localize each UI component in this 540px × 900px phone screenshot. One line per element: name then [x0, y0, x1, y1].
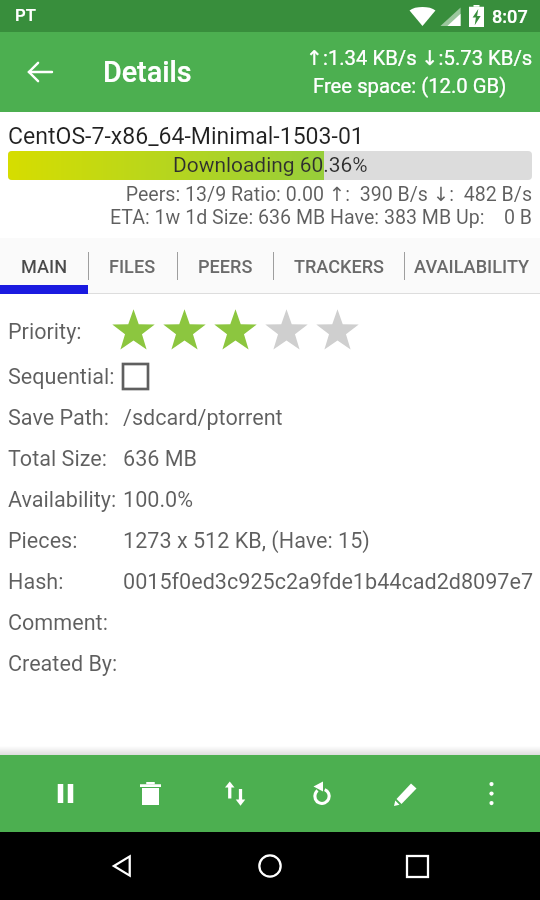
- staticText: Availability:: [8, 487, 117, 512]
- button[interactable]: AVAILABILITY: [404, 238, 540, 294]
- staticText: Priority:: [8, 319, 82, 344]
- button[interactable]: Availability:: [0, 479, 540, 520]
- button[interactable]: Sequential:: [0, 356, 540, 397]
- staticText: Save Path:: [8, 405, 109, 430]
- button[interactable]: Back: [0, 32, 79, 112]
- button[interactable]: Total Size:: [0, 438, 540, 479]
- staticText: MAIN: [21, 256, 68, 277]
- button[interactable]: Edit: [377, 764, 436, 823]
- button[interactable]: Save Path:: [0, 397, 540, 438]
- staticText: 100.0%: [123, 487, 194, 512]
- button[interactable]: TRACKERS: [273, 238, 404, 294]
- staticText: PEERS: [198, 256, 253, 277]
- button[interactable]: Comment:: [0, 602, 540, 643]
- staticText: PT: [15, 6, 36, 26]
- button[interactable]: Pause: [36, 764, 95, 823]
- button[interactable]: Pieces:: [0, 520, 540, 561]
- button[interactable]: Sequential toggle: [123, 364, 148, 389]
- button[interactable]: Recents: [393, 842, 441, 890]
- staticText: AVAILABILITY: [414, 256, 530, 277]
- staticText: 0015f0ed3c925c2a9fde1b44cad2d8097e7c3a: [123, 569, 540, 594]
- staticText: CentOS-7-x86_64-Minimal-1503-01: [8, 123, 364, 150]
- button[interactable]: MAIN: [0, 238, 88, 294]
- button[interactable]: Sort: [206, 764, 265, 823]
- staticText: Total Size:: [8, 446, 107, 471]
- staticText: ETA: 1w 1d Size: 636 MB Have: 383 MB Up:…: [0, 206, 532, 229]
- button[interactable]: Restart: [292, 764, 351, 823]
- button[interactable]: FILES: [88, 238, 177, 294]
- staticText: Peers: 13/9 Ratio: 0.00 ↑: 390 B/s ↓: 48…: [0, 183, 532, 206]
- staticText: 8:07: [492, 6, 528, 27]
- button[interactable]: PEERS: [177, 238, 273, 294]
- button[interactable]: Created By:: [0, 643, 540, 684]
- staticText: Comment:: [8, 610, 108, 635]
- staticText: ↑:1.34 KB/s ↓:5.73 KB/s: [306, 46, 533, 70]
- staticText: 636 MB: [123, 446, 198, 471]
- staticText: Free space: (12.0 GB): [313, 74, 507, 98]
- button[interactable]: Back: [99, 842, 147, 890]
- button[interactable]: Priority:: [0, 307, 540, 356]
- staticText: TRACKERS: [294, 256, 384, 277]
- staticText: Sequential:: [8, 364, 115, 389]
- button[interactable]: Home: [246, 842, 294, 890]
- staticText: FILES: [109, 256, 156, 277]
- staticText: Hash:: [8, 569, 64, 594]
- staticText: Created By:: [8, 651, 118, 676]
- staticText: Downloading 60.36%: [173, 153, 368, 178]
- button[interactable]: Delete: [121, 764, 180, 823]
- staticText: Details: [103, 55, 192, 89]
- staticText: Pieces:: [8, 528, 78, 553]
- button[interactable]: More options: [462, 764, 521, 823]
- staticText: 1273 x 512 KB, (Have: 15): [123, 528, 370, 553]
- button[interactable]: Hash:: [0, 561, 540, 602]
- staticText: /sdcard/ptorrent: [123, 405, 283, 430]
